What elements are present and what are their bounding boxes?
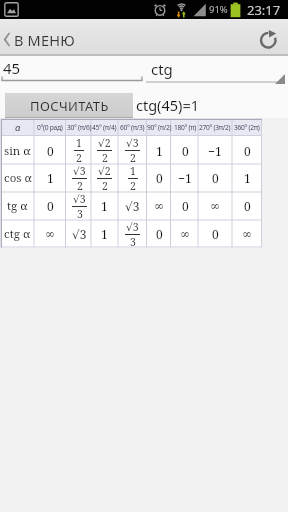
staticText: ПОСЧИТАТЬ <box>30 97 109 115</box>
staticText: 90° (π/2) <box>147 123 172 132</box>
staticText: ctg(45)=1 <box>136 95 199 115</box>
staticText: 1 <box>101 198 108 214</box>
staticText: 180° (π) <box>174 123 197 132</box>
staticText: √2 <box>98 136 111 150</box>
button[interactable]: ctg <box>144 56 288 84</box>
staticText: 360° (2π) <box>234 123 260 132</box>
staticText: 0 <box>156 226 163 242</box>
staticText: В МЕНЮ <box>14 30 75 50</box>
staticText: 45° (π/4) <box>92 123 117 132</box>
staticText: 0 <box>156 170 163 186</box>
staticText: 45 <box>3 58 21 78</box>
staticText: 0 <box>212 226 219 242</box>
staticText: 0 <box>244 143 251 159</box>
staticText: cos α <box>4 170 32 186</box>
staticText: 1 <box>244 170 251 186</box>
staticText: 0 <box>47 198 54 214</box>
staticText: 91% <box>209 3 228 16</box>
staticText: √3 <box>72 226 87 242</box>
staticText: 2 <box>130 179 136 193</box>
staticText: √3 <box>73 164 86 178</box>
button[interactable]: 45 <box>0 56 144 82</box>
staticText: 2 <box>77 179 83 193</box>
staticText: 3 <box>130 235 136 249</box>
staticText: ctg α <box>4 226 31 242</box>
staticText: 1 <box>156 143 163 159</box>
staticText: ∞ <box>45 227 55 241</box>
staticText: 60° (π/3) <box>120 123 145 132</box>
staticText: 0 <box>212 170 219 186</box>
staticText: ∞ <box>180 227 190 241</box>
staticText: 0 <box>244 198 251 214</box>
button[interactable] <box>259 30 278 49</box>
staticText: 0°(0 рад) <box>37 123 63 132</box>
staticText: 0 <box>182 198 189 214</box>
button[interactable]: ПОСЧИТАТЬ <box>5 93 133 118</box>
staticText: ∞ <box>242 227 252 241</box>
staticText: −1 <box>208 143 222 159</box>
staticText: α <box>15 121 21 134</box>
staticText: sin α <box>4 143 31 159</box>
staticText: 2 <box>102 151 108 165</box>
staticText: √2 <box>98 164 111 178</box>
staticText: 1 <box>76 136 82 150</box>
button[interactable]: В МЕНЮ <box>0 30 75 50</box>
staticText: √3 <box>73 192 86 206</box>
staticText: 23:17 <box>247 1 281 19</box>
staticText: 0 <box>47 143 54 159</box>
staticText: −1 <box>178 170 192 186</box>
staticText: ∞ <box>210 199 220 213</box>
staticText: tg α <box>7 198 28 214</box>
staticText: √3 <box>126 136 139 150</box>
staticText: 30° (π/6) <box>67 123 92 132</box>
staticText: √3 <box>125 198 140 214</box>
staticText: 3 <box>77 207 83 221</box>
staticText: ctg <box>151 59 173 79</box>
staticText: 1 <box>101 226 108 242</box>
staticText: 2 <box>130 151 136 165</box>
staticText: 1 <box>130 164 136 178</box>
staticText: 0 <box>182 143 189 159</box>
staticText: ∞ <box>154 199 164 213</box>
staticText: 2 <box>102 179 108 193</box>
staticText: 270° (3π/2) <box>199 123 231 132</box>
staticText: 2 <box>76 151 82 165</box>
staticText: √3 <box>126 220 139 234</box>
staticText: 1 <box>47 170 54 186</box>
